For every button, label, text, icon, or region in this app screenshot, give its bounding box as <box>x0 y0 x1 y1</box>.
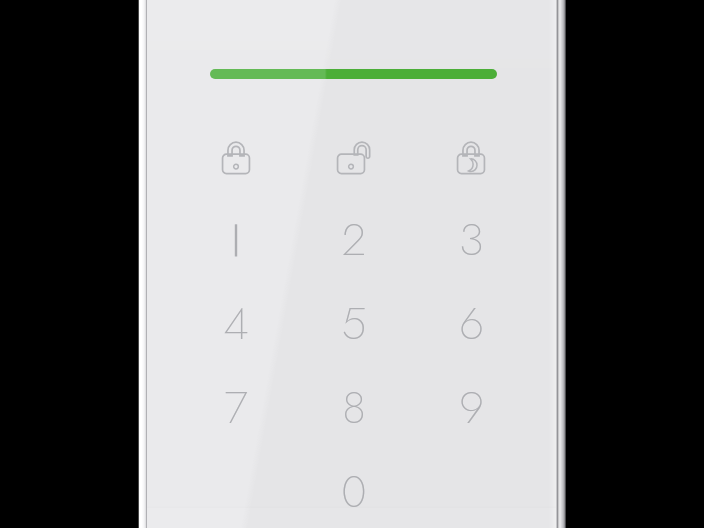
staticText: 3 <box>459 207 484 269</box>
staticText: 8 <box>342 375 366 437</box>
button[interactable]: Lock <box>216 138 256 178</box>
staticText: 5 <box>341 291 367 353</box>
button[interactable]: Night lock <box>451 138 491 178</box>
button[interactable] <box>189 207 283 269</box>
button[interactable]: Unlock <box>331 138 371 178</box>
button[interactable]: 6 <box>424 291 518 353</box>
button[interactable]: Status <box>210 69 497 79</box>
button[interactable]: 5 <box>307 291 401 353</box>
staticText: 6 <box>459 291 484 353</box>
button[interactable]: 3 <box>424 207 518 269</box>
button[interactable]: 2 <box>307 207 401 269</box>
button[interactable]: 9 <box>424 375 518 437</box>
button[interactable]: 8 <box>307 375 401 437</box>
staticText: 4 <box>223 291 249 353</box>
button[interactable]: 7 <box>189 375 283 437</box>
staticText: 2 <box>342 207 366 269</box>
staticText: 7 <box>224 375 248 437</box>
staticText: 9 <box>459 375 484 437</box>
button[interactable]: 4 <box>189 291 283 353</box>
button[interactable]: 0 <box>307 459 401 521</box>
staticText: 0 <box>341 459 367 521</box>
